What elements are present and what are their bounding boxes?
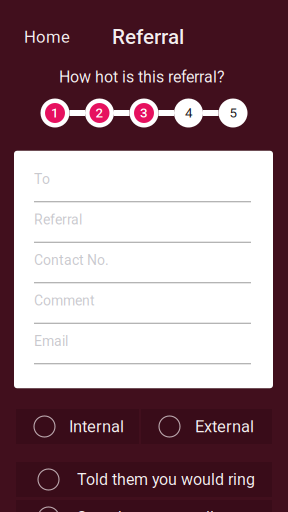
staticText: 5	[229, 105, 236, 121]
staticText: Comment	[34, 292, 95, 309]
staticText: To	[34, 171, 50, 187]
staticText: How hot is this referral?	[59, 68, 225, 86]
staticText: Referral	[34, 211, 82, 228]
button[interactable]: External	[141, 409, 272, 444]
staticText: 3	[140, 105, 148, 121]
staticText: External	[195, 417, 254, 436]
button[interactable]: Home	[10, 17, 84, 57]
staticText: Internal	[69, 417, 124, 436]
button[interactable]: Told them you would ring	[16, 462, 272, 497]
staticText: 1	[51, 105, 59, 121]
staticText: Referral	[112, 25, 184, 49]
staticText: 4	[185, 105, 192, 121]
staticText: Told them you would ring	[77, 470, 255, 489]
staticText: Email	[34, 333, 68, 349]
staticText: 2	[95, 105, 103, 121]
button[interactable]: Sent them an email	[16, 500, 272, 512]
staticText: Sent them an email	[77, 508, 214, 512]
button[interactable]: Internal	[16, 409, 139, 444]
staticText: Contact No.	[34, 252, 109, 268]
staticText: Home	[24, 27, 70, 47]
